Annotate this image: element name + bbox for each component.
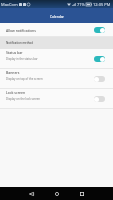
button[interactable]: Recents	[69, 187, 94, 200]
staticText: Lock screen	[6, 90, 26, 95]
button[interactable]: Home	[44, 187, 69, 200]
staticText: Display on the lock screen	[6, 97, 41, 101]
staticText: Display on top of the screen	[6, 77, 43, 81]
staticText: MaxCom	[1, 2, 18, 7]
button[interactable]: Status bar	[0, 49, 113, 69]
staticText: 71%	[77, 2, 85, 7]
staticText: Display in the status bar	[6, 57, 38, 61]
staticText: Allow notifications	[6, 28, 94, 33]
button[interactable]: Lock screen	[0, 89, 113, 109]
staticText: Status bar	[6, 50, 23, 55]
button[interactable]: Back	[19, 187, 44, 200]
button[interactable]: Banners	[0, 69, 113, 89]
staticText: 12:05 PM	[93, 2, 111, 7]
staticText: Notification method	[6, 41, 33, 45]
staticText: Calendar	[50, 14, 64, 18]
button[interactable]: Allow notifications	[0, 23, 113, 37]
staticText: Banners	[6, 70, 20, 75]
